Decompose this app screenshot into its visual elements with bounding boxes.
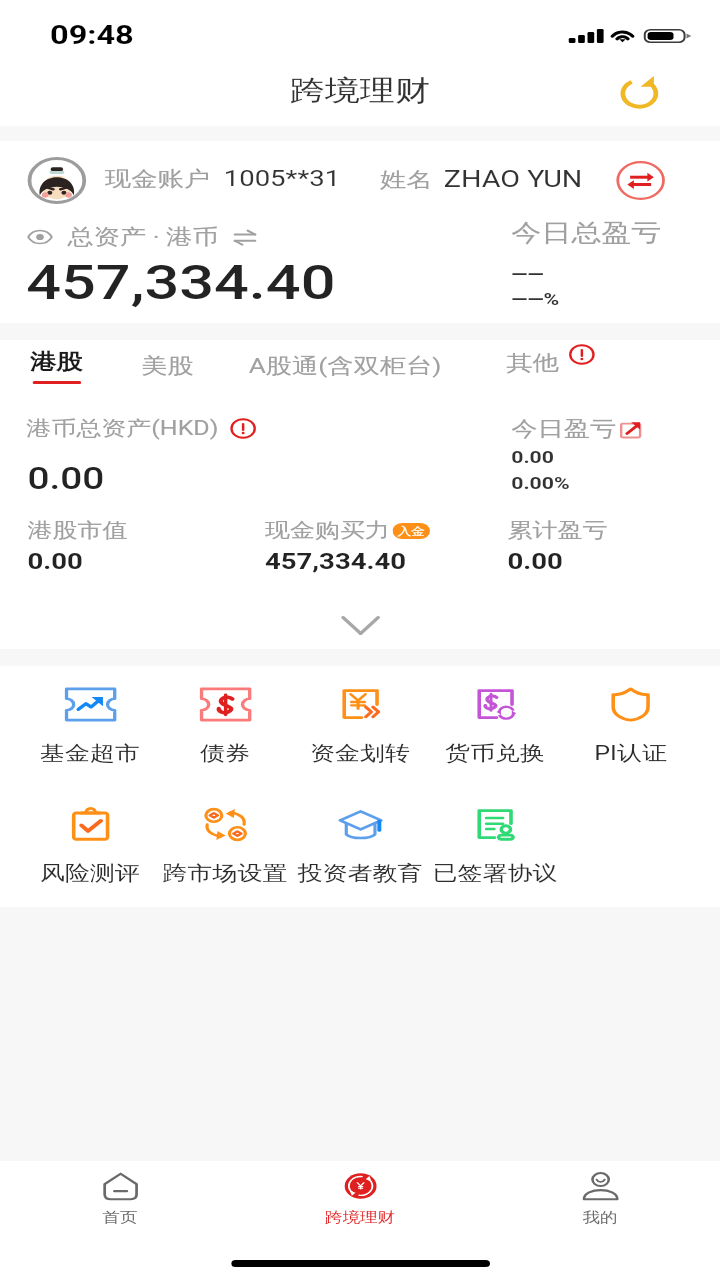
staticText: 基金超市 [40,741,140,766]
staticText: 0.00 [27,549,84,575]
button[interactable]: 其他 [501,346,600,380]
staticText: 1005**31 [224,166,341,192]
staticText: 0.00 [507,549,564,575]
staticText: 今日盈亏 [511,416,616,442]
staticText: 风险测评 [40,861,140,886]
staticText: 累计盈亏 [507,518,607,543]
staticText: 457,334.40 [26,254,336,311]
staticText: 我的 [582,1209,617,1227]
button[interactable]: 风险测评 [22,804,157,886]
button[interactable]: Switch account [611,157,670,204]
button[interactable]: A股通(含双柜台) [244,349,448,383]
staticText: ——% [511,289,560,309]
staticText: PI认证 [594,741,668,766]
button[interactable]: 资金划转 [292,684,427,766]
button[interactable]: Expand [322,606,397,644]
staticText: 入金 [397,524,425,538]
staticText: 0.00 [511,447,555,467]
button[interactable]: 已签署协议 [427,804,562,886]
staticText: 投资者教育 [297,861,422,886]
staticText: 09:48 [50,20,134,50]
staticText: 资金划转 [310,741,410,766]
button[interactable]: 货币兑换 [427,684,562,766]
staticText: 债券 [200,741,250,766]
button[interactable]: 首页 [0,1172,240,1227]
staticText: —— [511,264,544,284]
staticText: 跨境理财 [325,1209,395,1227]
staticText: 港股 [30,349,82,375]
staticText: 0.00 [27,460,105,496]
staticText: 现金账户 [105,166,210,192]
staticText: 0.00% [511,473,570,493]
button[interactable]: Refresh [617,76,661,111]
button[interactable]: 跨市场设置 [157,804,292,886]
button[interactable]: 我的 [480,1172,720,1227]
staticText: 姓名 [380,167,432,193]
staticText: 首页 [102,1209,137,1227]
button[interactable]: 港股 [17,345,95,388]
button[interactable]: 跨境理财 [240,1172,480,1227]
staticText: 其他 [506,350,559,376]
staticText: 港股市值 [27,518,127,543]
button[interactable]: 美股 [136,349,199,383]
button[interactable]: PI认证 [562,684,697,766]
staticText: 货币兑换 [445,741,545,766]
staticText: 跨境理财 [290,73,430,108]
staticText: 港币总资产(HKD) [26,416,219,441]
staticText: 今日总盈亏 [511,218,661,248]
button[interactable]: 基金超市 [22,684,157,766]
staticText: ZHAO YUN [444,166,583,193]
button[interactable]: 债券 [157,684,292,766]
staticText: 457,334.40 [265,549,406,575]
button[interactable]: 投资者教育 [292,804,427,886]
staticText: 已签署协议 [432,861,557,886]
staticText: 现金购买力 [265,518,390,543]
staticText: 跨市场设置 [162,861,287,886]
staticText: 总资产 · 港币 [67,224,219,250]
